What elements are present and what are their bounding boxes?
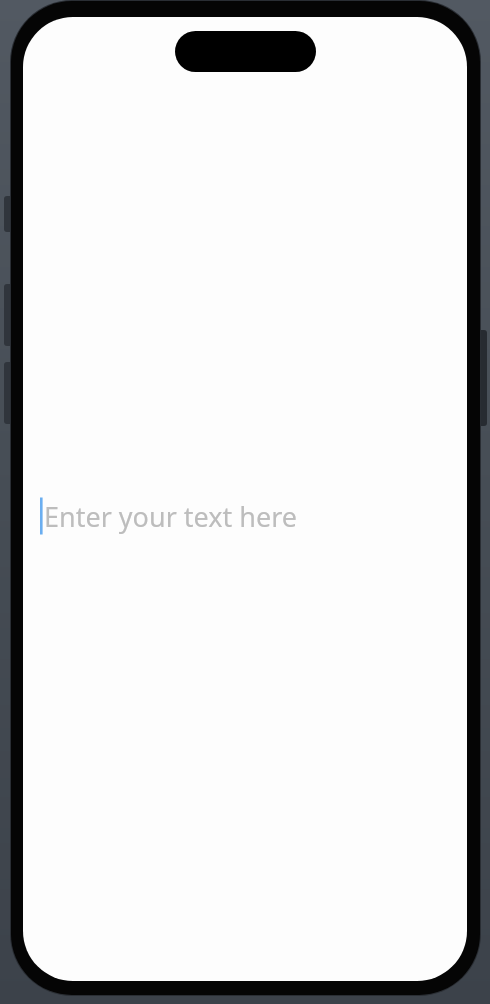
button[interactable]: Text field, Enter your text here — [40, 479, 450, 553]
staticText: Enter your text here — [44, 498, 298, 535]
other: Dynamic Island — [175, 31, 316, 72]
